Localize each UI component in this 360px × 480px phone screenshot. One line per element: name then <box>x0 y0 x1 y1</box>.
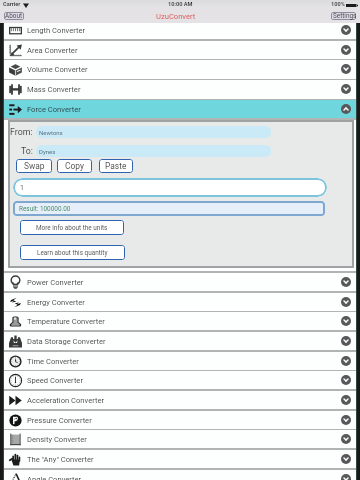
button[interactable]: Angle Converter <box>4 470 356 480</box>
staticText: Time Converter <box>27 357 79 366</box>
staticText: Mass Converter <box>27 85 81 94</box>
staticText: Copy <box>65 161 84 171</box>
staticText: Newtons <box>39 129 63 136</box>
button[interactable]: Temperature Converter <box>4 312 356 330</box>
button[interactable]: Area Converter <box>4 41 356 59</box>
staticText: Pressure Converter <box>27 416 92 425</box>
staticText: 1 <box>20 184 24 192</box>
button[interactable]: Power Converter <box>4 273 356 291</box>
button[interactable]: Expand <box>341 25 351 35</box>
staticText: Angle Converter <box>27 475 82 480</box>
staticText: Swap <box>24 161 45 171</box>
button[interactable]: Expand <box>341 64 351 74</box>
button[interactable]: Copy <box>57 159 92 173</box>
staticText: The "Any" Converter <box>27 455 94 464</box>
button[interactable]: Time Converter <box>4 352 356 370</box>
button[interactable]: Expand <box>341 375 351 385</box>
button[interactable] <box>4 12 24 20</box>
button[interactable]: Expand <box>341 45 351 55</box>
button[interactable]: Expand <box>341 415 351 425</box>
staticText: Energy Converter <box>27 298 85 307</box>
button[interactable]: Learn about this quantity <box>20 245 125 260</box>
button[interactable]: Mass Converter <box>4 80 356 98</box>
staticText: Length Converter <box>27 26 86 35</box>
button[interactable]: Data Storage Converter <box>4 332 356 350</box>
button[interactable]: Newtons <box>36 126 271 138</box>
staticText: About <box>5 12 23 20</box>
button[interactable]: Paste <box>99 159 133 173</box>
staticText: Acceleration Converter <box>27 396 105 405</box>
staticText: 100% <box>331 1 345 8</box>
button[interactable]: Expand <box>341 84 351 94</box>
button[interactable]: Expand <box>341 316 351 326</box>
button[interactable]: Acceleration Converter <box>4 391 356 409</box>
button[interactable]: Expand <box>341 356 351 366</box>
button[interactable]: The "Any" Converter <box>4 450 356 468</box>
staticText: Settings <box>333 12 357 20</box>
staticText: Data Storage Converter <box>27 337 106 346</box>
button[interactable] <box>331 12 356 20</box>
button[interactable]: Expand <box>341 297 351 307</box>
staticText: Speed Converter <box>27 376 83 385</box>
button[interactable]: Expand <box>341 277 351 287</box>
staticText: Learn about this quantity <box>37 249 108 257</box>
staticText: Volume Converter <box>27 65 88 74</box>
button[interactable]: Energy Converter <box>4 293 356 311</box>
staticText: To: <box>21 146 33 156</box>
button[interactable]: Length Converter <box>4 23 356 39</box>
button[interactable]: Swap <box>16 159 52 173</box>
button[interactable]: Density Converter <box>4 430 356 448</box>
button[interactable]: Expand <box>341 454 351 464</box>
staticText: 10:00 AM <box>168 1 193 8</box>
button[interactable]: Force Converter <box>4 100 356 118</box>
staticText: Dynes <box>39 148 56 155</box>
button[interactable]: Volume Converter <box>4 60 356 78</box>
button[interactable]: More info about the units <box>20 220 124 235</box>
button[interactable]: Collapse <box>341 104 351 114</box>
staticText: From: <box>10 127 33 137</box>
staticText: Result: 100000.00 <box>19 205 71 213</box>
staticText: Force Converter <box>27 105 81 114</box>
button[interactable]: Dynes <box>36 145 271 157</box>
button[interactable]: 1 <box>13 178 327 197</box>
staticText: Area Converter <box>27 46 78 55</box>
staticText: Power Converter <box>27 278 84 287</box>
staticText: Density Converter <box>27 435 87 444</box>
staticText: Carrier <box>3 1 21 8</box>
button[interactable]: Speed Converter <box>4 371 356 389</box>
staticText: UzuConvert <box>156 12 196 21</box>
staticText: Temperature Converter <box>27 317 105 326</box>
staticText: More info about the units <box>36 224 108 232</box>
button[interactable]: Pressure Converter <box>4 411 356 429</box>
staticText: Paste <box>105 161 127 171</box>
button[interactable]: Expand <box>341 434 351 444</box>
button[interactable]: Expand <box>341 336 351 346</box>
button[interactable]: Expand <box>341 474 351 480</box>
button[interactable]: Expand <box>341 395 351 405</box>
